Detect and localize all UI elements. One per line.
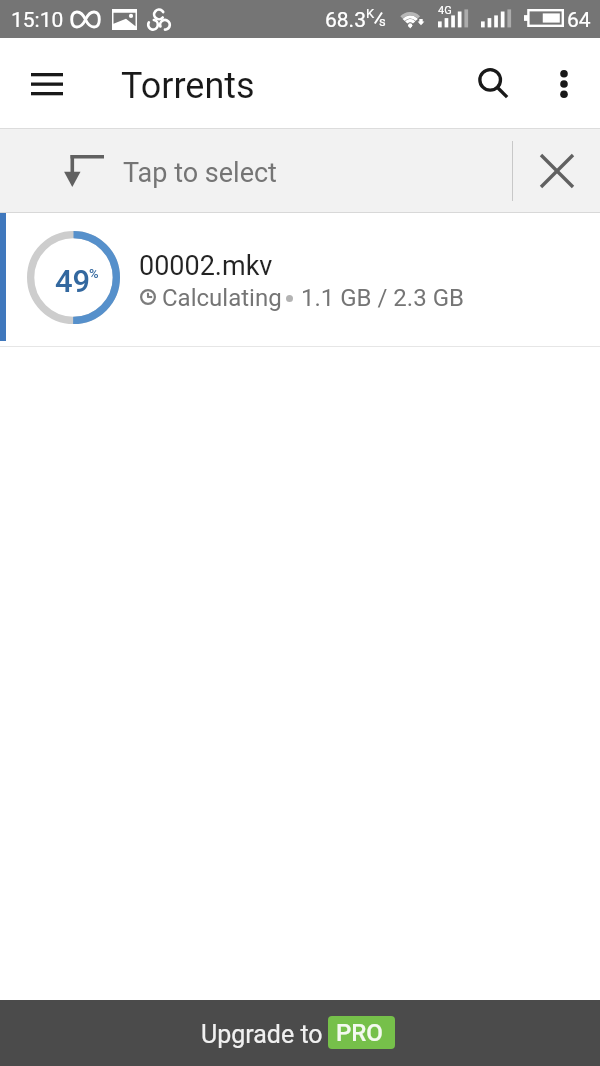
- staticText: Upgrade to: [201, 1020, 323, 1049]
- button[interactable]: Close selection mode: [513, 129, 600, 213]
- staticText: 68.3: [325, 8, 366, 33]
- staticText: PRO: [336, 1019, 383, 1047]
- button[interactable]: More options: [542, 38, 600, 129]
- staticText: K: [366, 6, 375, 21]
- button[interactable]: Upgrade to: [0, 1000, 600, 1066]
- staticText: Torrents: [121, 65, 255, 107]
- staticText: Tap to select: [123, 157, 277, 189]
- staticText: 64: [567, 8, 591, 33]
- button[interactable]: Search: [478, 38, 542, 129]
- button[interactable]: 49: [0, 213, 600, 347]
- staticText: s: [379, 14, 386, 29]
- staticText: Calculating: [162, 284, 282, 312]
- staticText: %: [89, 266, 99, 281]
- staticText: 4G: [438, 4, 452, 17]
- staticText: 49: [55, 263, 91, 299]
- staticText: 15:10: [11, 8, 64, 33]
- staticText: 00002.mkv: [139, 250, 273, 282]
- button[interactable]: Navigation menu: [0, 38, 94, 129]
- staticText: 1.1 GB / 2.3 GB: [301, 284, 464, 312]
